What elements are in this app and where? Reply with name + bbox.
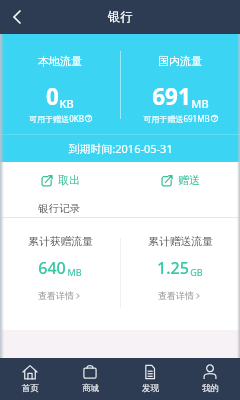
staticText: 国内流量	[158, 54, 202, 68]
staticText: 发现	[142, 383, 159, 394]
staticText: 0	[46, 81, 59, 112]
button[interactable]: Discover	[120, 358, 180, 400]
staticText: 查看详情	[158, 290, 194, 301]
staticText: 累计获赠流量	[28, 235, 93, 249]
staticText: 我的	[202, 383, 219, 394]
staticText: 银行	[108, 9, 133, 25]
staticText: 本地流量	[38, 54, 82, 68]
staticText: 到期时间:2016-05-31	[68, 141, 173, 156]
staticText: 可用于赠送0KB	[29, 113, 84, 124]
staticText: 查看详情	[38, 290, 74, 301]
staticText: 商城	[82, 383, 99, 394]
button[interactable]: Shop	[60, 358, 120, 400]
staticText: GB	[190, 266, 203, 278]
staticText: 1.25	[157, 257, 189, 279]
staticText: KB	[59, 96, 74, 111]
staticText: 可用于赠送691MB	[143, 113, 210, 124]
staticText: 累计赠送流量	[148, 235, 213, 249]
staticText: 首页	[22, 383, 39, 394]
staticText: 640	[38, 257, 66, 279]
staticText: 取出	[58, 173, 80, 187]
button[interactable]: 查看详情	[158, 290, 202, 301]
staticText: 赠送	[178, 173, 200, 187]
button[interactable]: 赠送	[120, 162, 240, 198]
button[interactable]: 取出	[0, 162, 120, 198]
button[interactable]: Back	[4, 4, 30, 30]
staticText: MB	[67, 266, 82, 278]
button[interactable]: Home	[0, 358, 60, 400]
button[interactable]: Profile	[180, 358, 240, 400]
staticText: MB	[191, 96, 209, 111]
button[interactable]: 查看详情	[38, 290, 82, 301]
staticText: 银行记录	[38, 202, 80, 215]
staticText: 691	[152, 81, 191, 112]
